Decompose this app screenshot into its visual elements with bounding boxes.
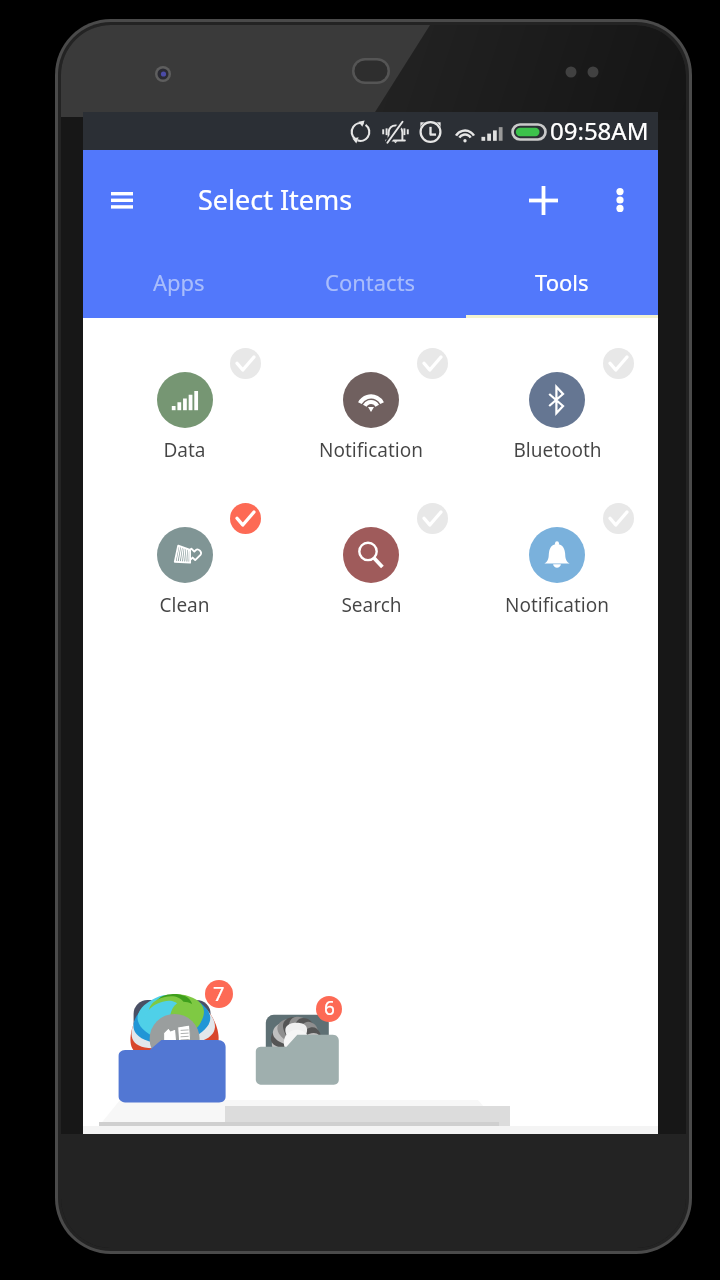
button[interactable]: Tools <box>466 250 658 318</box>
button[interactable]: Add <box>514 171 572 229</box>
staticText: 09:58AM <box>550 114 649 147</box>
button[interactable]: Apps <box>83 250 274 318</box>
staticText: 6 <box>324 996 335 1021</box>
button[interactable]: Bluetooth <box>464 372 650 492</box>
staticText: Bluetooth <box>513 437 602 463</box>
staticText: Notification <box>319 437 423 463</box>
staticText: Clean <box>159 592 210 618</box>
button[interactable]: Menu <box>93 171 151 229</box>
staticText: 7 <box>213 980 225 1007</box>
button[interactable]: More options <box>591 171 649 229</box>
button[interactable]: Notification <box>278 372 464 492</box>
staticText: Tools <box>535 267 589 297</box>
button[interactable]: Notification <box>464 527 650 647</box>
staticText: Apps <box>153 267 205 297</box>
button[interactable]: Search <box>278 527 464 647</box>
staticText: Notification <box>505 592 609 618</box>
staticText: Search <box>341 592 402 618</box>
button[interactable]: Contacts <box>274 250 466 318</box>
button[interactable]: Clean <box>91 527 278 647</box>
staticText: Select Items <box>198 181 353 218</box>
button[interactable]: Data <box>91 372 278 492</box>
staticText: Contacts <box>325 267 416 297</box>
staticText: Data <box>163 437 206 463</box>
